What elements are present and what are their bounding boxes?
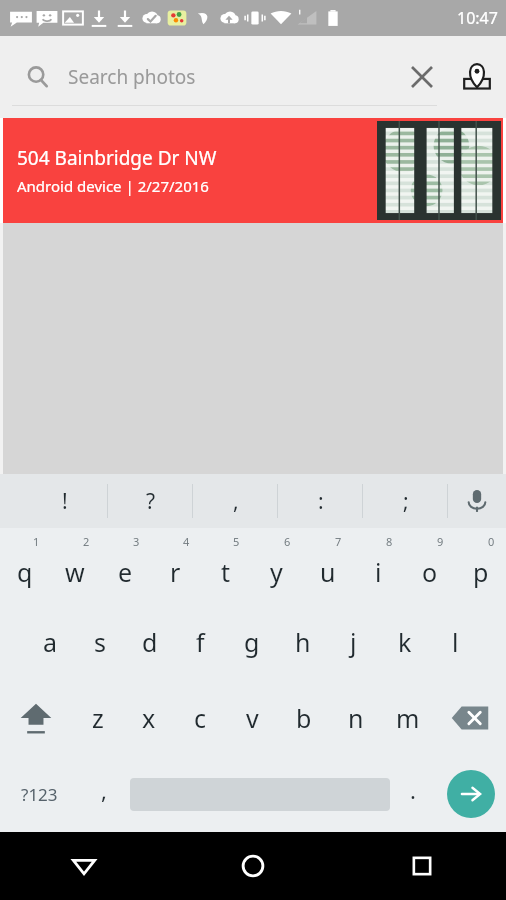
- staticText: k: [398, 625, 412, 659]
- staticText: ;: [403, 487, 409, 516]
- staticText: :: [318, 487, 324, 516]
- staticText: f: [196, 625, 205, 659]
- button[interactable]: b: [278, 680, 330, 756]
- staticText: w: [65, 555, 85, 589]
- staticText: c: [194, 701, 207, 735]
- staticText: q: [17, 555, 33, 589]
- button[interactable]: n: [330, 680, 382, 756]
- button[interactable]: 504 Bainbridge Dr NW: [3, 118, 503, 223]
- button[interactable]: h: [277, 604, 328, 680]
- button[interactable]: 7: [302, 528, 353, 604]
- staticText: e: [118, 555, 133, 589]
- staticText: 3: [133, 534, 140, 549]
- staticText: i: [375, 555, 382, 589]
- button[interactable]: f: [175, 604, 226, 680]
- button[interactable]: s: [75, 604, 125, 680]
- button[interactable]: v: [226, 680, 278, 756]
- button[interactable]: Home: [168, 832, 337, 900]
- button[interactable]: d: [125, 604, 175, 680]
- staticText: u: [320, 555, 336, 589]
- staticText: p: [473, 555, 489, 589]
- staticText: l: [452, 625, 459, 659]
- button[interactable]: Back: [0, 832, 168, 900]
- staticText: 5: [233, 534, 240, 549]
- staticText: 7: [335, 534, 342, 549]
- staticText: t: [221, 555, 231, 589]
- staticText: 1: [33, 534, 40, 549]
- button[interactable]: ,: [193, 474, 278, 528]
- button[interactable]: ?: [108, 474, 193, 528]
- staticText: z: [92, 701, 104, 735]
- staticText: g: [244, 625, 260, 659]
- staticText: a: [43, 625, 58, 659]
- button[interactable]: z: [72, 680, 123, 756]
- staticText: !: [62, 487, 68, 516]
- button[interactable]: 5: [200, 528, 251, 604]
- button[interactable]: m: [382, 680, 434, 756]
- staticText: o: [422, 555, 438, 589]
- staticText: h: [295, 625, 311, 659]
- button[interactable]: Voice input: [448, 474, 506, 528]
- button[interactable]: ;: [363, 474, 448, 528]
- button[interactable]: Search on map: [448, 48, 506, 106]
- button[interactable]: 0: [455, 528, 506, 604]
- button[interactable]: Search photos: [0, 36, 396, 118]
- staticText: 9: [437, 534, 444, 549]
- button[interactable]: !: [22, 474, 108, 528]
- button[interactable]: j: [328, 604, 379, 680]
- staticText: b: [296, 701, 312, 735]
- button[interactable]: 6: [251, 528, 302, 604]
- button[interactable]: Space: [130, 756, 390, 832]
- button[interactable]: Backspace: [434, 680, 506, 756]
- staticText: s: [94, 625, 106, 659]
- staticText: 0: [488, 534, 495, 549]
- button[interactable]: a: [25, 604, 75, 680]
- button[interactable]: ?123: [0, 756, 78, 832]
- staticText: v: [246, 701, 259, 735]
- button[interactable]: g: [226, 604, 277, 680]
- staticText: r: [170, 555, 181, 589]
- staticText: y: [270, 555, 283, 589]
- button[interactable]: .: [390, 756, 436, 832]
- staticText: 504 Bainbridge Dr NW: [17, 145, 217, 171]
- staticText: 8: [386, 534, 393, 549]
- staticText: Search photos: [68, 64, 196, 90]
- button[interactable]: 8: [353, 528, 404, 604]
- button[interactable]: ,: [78, 756, 130, 832]
- staticText: 4: [183, 534, 190, 549]
- button[interactable]: Shift: [0, 680, 72, 756]
- staticText: 6: [284, 534, 291, 549]
- staticText: 2: [83, 534, 90, 549]
- staticText: .: [410, 775, 416, 805]
- button[interactable]: l: [430, 604, 481, 680]
- staticText: ?: [146, 487, 156, 516]
- button[interactable]: Clear search: [396, 51, 448, 103]
- button[interactable]: Search: [436, 756, 506, 832]
- staticText: ,: [233, 487, 239, 516]
- staticText: n: [348, 701, 364, 735]
- button[interactable]: 2: [50, 528, 100, 604]
- button[interactable]: Recents: [337, 832, 506, 900]
- staticText: j: [350, 625, 357, 659]
- staticText: ,: [101, 775, 107, 805]
- staticText: ?123: [21, 783, 58, 806]
- staticText: Android device | 2/27/2016: [17, 176, 209, 196]
- button[interactable]: x: [123, 680, 174, 756]
- button[interactable]: 9: [404, 528, 455, 604]
- button[interactable]: c: [174, 680, 226, 756]
- button[interactable]: :: [278, 474, 363, 528]
- button[interactable]: 4: [150, 528, 200, 604]
- button[interactable]: 1: [0, 528, 50, 604]
- button[interactable]: k: [379, 604, 430, 680]
- staticText: m: [396, 701, 420, 735]
- staticText: d: [142, 625, 158, 659]
- staticText: 10:47: [457, 7, 498, 29]
- button[interactable]: 3: [100, 528, 150, 604]
- staticText: x: [142, 701, 156, 735]
